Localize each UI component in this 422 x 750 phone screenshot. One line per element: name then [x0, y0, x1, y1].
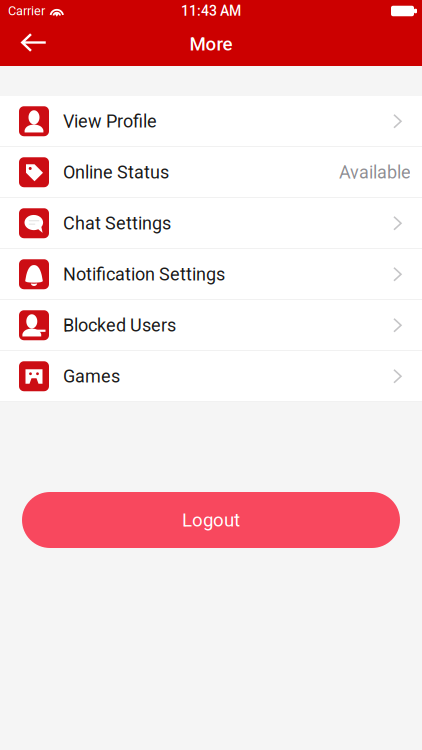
button[interactable]: Games [0, 351, 422, 402]
button[interactable]: Logout [22, 492, 400, 548]
staticText: Games [63, 366, 120, 387]
staticText: Carrier [8, 4, 45, 18]
button[interactable]: View Profile [0, 96, 422, 147]
staticText: More [189, 33, 232, 55]
staticText: Notification Settings [63, 264, 225, 285]
staticText: Logout [182, 509, 240, 531]
button[interactable]: Chat Settings [0, 198, 422, 249]
button[interactable]: Online Status [0, 147, 422, 198]
staticText: 11:43 AM [181, 3, 241, 19]
staticText: Available [339, 162, 411, 183]
button[interactable]: Notification Settings [0, 249, 422, 300]
button[interactable]: Back [0, 22, 56, 66]
staticText: Online Status [63, 162, 169, 183]
staticText: View Profile [63, 111, 157, 132]
staticText: Chat Settings [63, 213, 171, 234]
staticText: Blocked Users [63, 315, 176, 336]
button[interactable]: Blocked Users [0, 300, 422, 351]
